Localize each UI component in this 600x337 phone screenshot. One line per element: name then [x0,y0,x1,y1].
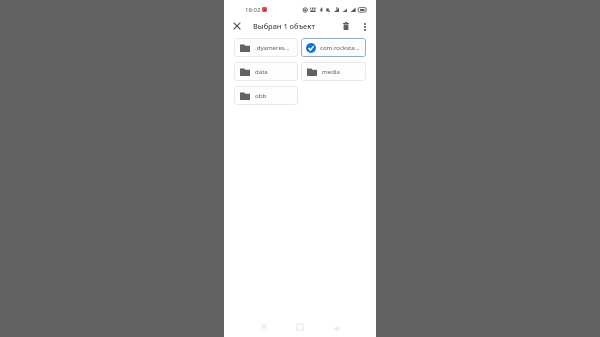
staticText: Выбран 1 объект [253,21,315,31]
staticText: data [255,67,268,75]
staticText: .dyameres… [255,43,290,51]
staticText: media [322,67,340,75]
button[interactable]: media [301,62,366,81]
button[interactable]: .dyameres… [234,38,298,57]
button[interactable]: Back [326,318,346,337]
button[interactable]: Home [290,317,310,337]
button[interactable]: Delete [339,19,353,33]
staticText: 18:02 [245,6,261,14]
button[interactable]: data [234,62,298,81]
staticText: obb [255,91,267,99]
staticText: com.rockstar… [320,43,361,51]
button[interactable]: Close [230,19,244,33]
button[interactable]: More options [358,20,371,33]
button[interactable]: obb [234,86,298,105]
button[interactable]: com.rockstar… [301,38,366,57]
button[interactable]: Recents [254,317,274,337]
